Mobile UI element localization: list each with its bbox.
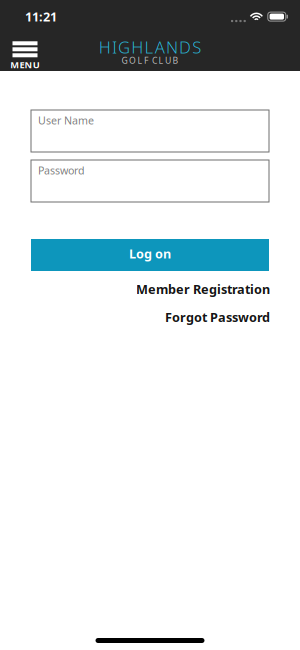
staticText: 11:21 (25, 8, 57, 25)
staticText: I (112, 36, 117, 58)
staticText: L (144, 36, 153, 58)
staticText: H (131, 36, 143, 58)
staticText: Password (38, 163, 85, 177)
staticText: Log on (129, 245, 171, 262)
staticText: O (129, 55, 136, 66)
staticText: MENU (10, 58, 40, 71)
staticText: U (165, 55, 171, 66)
staticText: User Name (38, 113, 94, 127)
button[interactable]: Forgot Password (30, 308, 270, 326)
staticText: L (137, 55, 142, 66)
staticText: Forgot Password (165, 308, 270, 326)
staticText: S (192, 36, 201, 58)
button[interactable]: Menu (0, 30, 50, 71)
staticText: D (179, 36, 191, 58)
staticText: Member Registration (136, 280, 270, 298)
staticText: A (155, 36, 165, 58)
staticText: B (172, 55, 178, 66)
staticText: F (144, 55, 148, 66)
staticText: N (166, 36, 178, 58)
button[interactable]: Log on (31, 239, 269, 271)
staticText: G (121, 55, 127, 66)
staticText: L (158, 55, 163, 66)
staticText: G (118, 36, 130, 58)
button[interactable]: Member Registration (30, 280, 270, 298)
staticText: H (99, 36, 111, 58)
staticText: C (152, 55, 157, 66)
